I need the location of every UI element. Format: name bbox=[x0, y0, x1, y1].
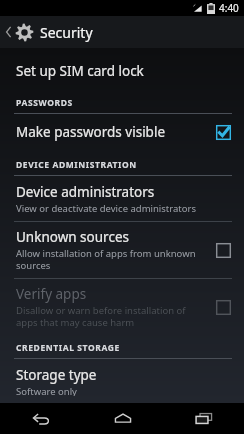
staticText: Allow installation of apps from unknown … bbox=[16, 247, 207, 272]
staticText: Device administrators bbox=[16, 183, 155, 201]
button[interactable]: Set up SIM card lock bbox=[0, 54, 244, 88]
staticText: Security bbox=[40, 23, 93, 42]
staticText: PASSWORDS bbox=[16, 97, 73, 109]
button[interactable]: Verify apps bbox=[0, 279, 244, 333]
staticText: Make passwords visible bbox=[16, 123, 166, 141]
staticText: 4:40 bbox=[219, 1, 239, 15]
staticText: Verify apps bbox=[16, 285, 87, 303]
staticText: Disallow or warn before installation of … bbox=[16, 304, 207, 329]
button[interactable]: Back bbox=[0, 403, 82, 434]
staticText: Unknown sources bbox=[16, 228, 129, 246]
button[interactable]: Storage type bbox=[0, 359, 244, 403]
button[interactable]: Make passwords visible bbox=[0, 114, 244, 150]
staticText: CREDENTIAL STORAGE bbox=[16, 342, 120, 354]
staticText: DEVICE ADMINISTRATION bbox=[16, 159, 137, 171]
staticText: Software only bbox=[16, 385, 77, 396]
staticText: Set up SIM card lock bbox=[16, 62, 144, 80]
staticText: View or deactivate device administrators bbox=[16, 202, 196, 215]
button[interactable]: Recent apps bbox=[163, 403, 244, 434]
staticText: Storage type bbox=[16, 366, 97, 384]
button[interactable]: Device administrators bbox=[0, 176, 244, 221]
button[interactable]: Home bbox=[82, 403, 163, 434]
button[interactable]: Navigate up bbox=[0, 16, 244, 48]
button[interactable]: Unknown sources bbox=[0, 222, 244, 278]
